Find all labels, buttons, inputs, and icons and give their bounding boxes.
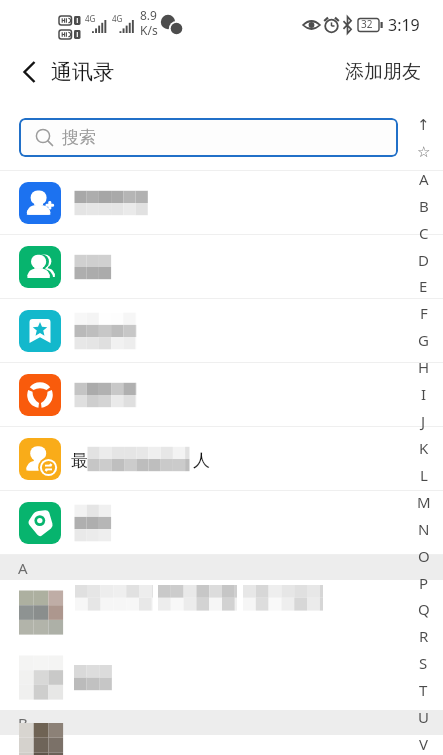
staticText: O bbox=[418, 546, 430, 566]
staticText: 4G bbox=[85, 13, 96, 24]
staticText: N bbox=[418, 519, 430, 539]
staticText: 搜索 bbox=[62, 127, 96, 148]
button[interactable] bbox=[0, 580, 443, 645]
staticText: J bbox=[421, 411, 426, 431]
staticText: 通讯录 bbox=[51, 59, 114, 85]
button[interactable]: 添加朋友 bbox=[323, 50, 443, 94]
button[interactable]: J bbox=[401, 407, 443, 434]
button[interactable]: C bbox=[401, 219, 443, 246]
staticText: M bbox=[417, 492, 431, 512]
staticText: 人 bbox=[193, 450, 210, 471]
button[interactable] bbox=[0, 299, 443, 363]
button[interactable]: U bbox=[401, 703, 443, 730]
staticText: A bbox=[18, 558, 28, 578]
staticText: E bbox=[419, 276, 428, 296]
staticText: K/s bbox=[140, 22, 158, 38]
button[interactable]: S bbox=[401, 649, 443, 676]
button[interactable]: I bbox=[401, 380, 443, 407]
button[interactable]: M bbox=[401, 488, 443, 515]
staticText: K bbox=[419, 438, 429, 458]
button[interactable]: F bbox=[401, 299, 443, 326]
staticText: 添加朋友 bbox=[345, 60, 421, 84]
button[interactable]: Back bbox=[0, 44, 48, 100]
button[interactable] bbox=[0, 235, 443, 299]
button[interactable]: ☆ bbox=[401, 138, 443, 165]
staticText: A bbox=[419, 169, 429, 189]
button[interactable]: V bbox=[401, 730, 443, 755]
staticText: 32 bbox=[361, 17, 373, 31]
staticText: P bbox=[419, 573, 429, 593]
button[interactable]: D bbox=[401, 246, 443, 273]
staticText: S bbox=[419, 653, 428, 673]
button[interactable]: ↑ bbox=[401, 111, 443, 138]
staticText: Q bbox=[418, 599, 430, 619]
button[interactable]: 搜索 bbox=[19, 118, 398, 157]
staticText: F bbox=[420, 303, 428, 323]
staticText: B bbox=[18, 713, 28, 733]
staticText: ☆ bbox=[417, 143, 431, 160]
staticText: B bbox=[419, 196, 429, 216]
button[interactable]: 最 bbox=[0, 427, 443, 491]
staticText: C bbox=[419, 223, 429, 243]
staticText: I bbox=[421, 384, 427, 404]
staticText: ↑ bbox=[417, 116, 430, 133]
staticText: G bbox=[418, 330, 429, 350]
button[interactable]: E bbox=[401, 272, 443, 299]
button[interactable]: H bbox=[401, 353, 443, 380]
staticText: 4G bbox=[112, 13, 123, 24]
button[interactable]: B bbox=[401, 192, 443, 219]
button[interactable]: A bbox=[401, 165, 443, 192]
staticText: U bbox=[418, 707, 429, 727]
button[interactable]: O bbox=[401, 542, 443, 569]
button[interactable] bbox=[0, 735, 443, 755]
button[interactable] bbox=[0, 171, 443, 235]
staticText: T bbox=[419, 680, 428, 700]
button[interactable] bbox=[0, 491, 443, 555]
button[interactable]: P bbox=[401, 569, 443, 596]
staticText: L bbox=[420, 465, 428, 485]
button[interactable]: G bbox=[401, 326, 443, 353]
button[interactable] bbox=[0, 363, 443, 427]
button[interactable]: N bbox=[401, 515, 443, 542]
button[interactable]: R bbox=[401, 622, 443, 649]
staticText: V bbox=[419, 734, 429, 754]
button[interactable] bbox=[0, 645, 443, 710]
staticText: H bbox=[418, 357, 430, 377]
button[interactable]: Q bbox=[401, 595, 443, 622]
staticText: 3:19 bbox=[388, 14, 420, 36]
staticText: 8.9 bbox=[140, 7, 157, 23]
staticText: D bbox=[418, 250, 429, 270]
button[interactable]: T bbox=[401, 676, 443, 703]
staticText: 最 bbox=[71, 450, 88, 471]
button[interactable]: L bbox=[401, 461, 443, 488]
button[interactable]: K bbox=[401, 434, 443, 461]
staticText: R bbox=[419, 626, 429, 646]
